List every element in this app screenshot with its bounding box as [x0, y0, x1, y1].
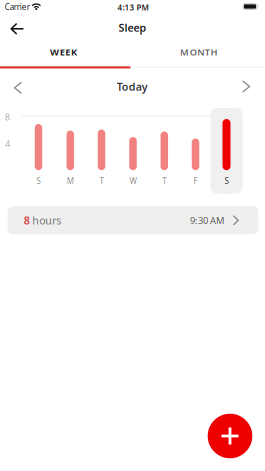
- staticText: 4: [5, 137, 10, 150]
- button[interactable]: Next week: [239, 77, 254, 96]
- staticText: MONTH: [180, 46, 217, 58]
- button[interactable]: Sleep for Wednesday: [117, 108, 149, 194]
- button[interactable]: Sleep for Saturday: [210, 108, 243, 194]
- button[interactable]: Back: [6, 19, 28, 39]
- staticText: Today: [117, 79, 148, 94]
- staticText: T: [162, 176, 166, 186]
- button[interactable]: Sleep for Sunday: [22, 108, 55, 194]
- button[interactable]: Previous week: [10, 78, 25, 97]
- button[interactable]: Sleep for Friday: [179, 108, 212, 194]
- staticText: 9:30 AM: [190, 214, 224, 226]
- button[interactable]: Sleep for Monday: [54, 108, 86, 194]
- staticText: 4:13 PM: [117, 2, 148, 13]
- staticText: M: [67, 176, 74, 186]
- staticText: S: [36, 176, 40, 186]
- button[interactable]: Add sleep entry: [208, 414, 252, 458]
- staticText: W: [129, 176, 136, 186]
- staticText: Carrier: [5, 2, 30, 12]
- staticText: WEEK: [50, 46, 77, 58]
- staticText: F: [193, 176, 197, 186]
- button[interactable]: 8: [8, 206, 258, 234]
- staticText: S: [224, 176, 228, 186]
- staticText: T: [99, 176, 103, 186]
- button[interactable]: Sleep for Tuesday: [85, 108, 118, 194]
- button[interactable]: WEEK: [0, 42, 130, 62]
- staticText: Sleep: [118, 20, 146, 35]
- staticText: 8: [24, 213, 30, 227]
- button[interactable]: MONTH: [132, 42, 265, 62]
- staticText: 8: [5, 111, 10, 123]
- button[interactable]: Sleep for Thursday: [148, 108, 180, 194]
- staticText: hours: [32, 213, 61, 227]
